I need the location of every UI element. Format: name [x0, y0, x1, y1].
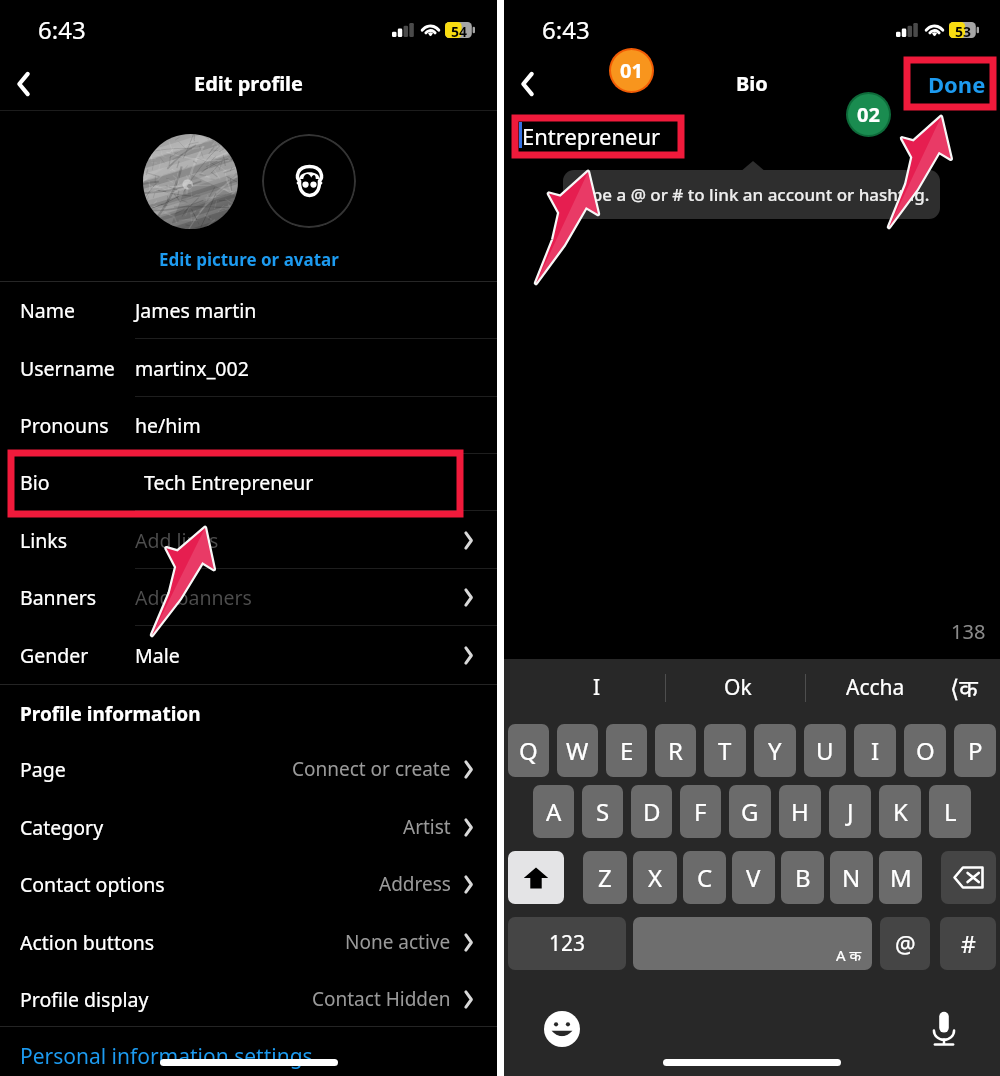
staticText: Z — [598, 861, 612, 894]
button[interactable]: Personal information settings — [18, 1040, 315, 1073]
button[interactable]: Backspace — [941, 851, 996, 904]
button[interactable]: Avatar — [262, 134, 356, 228]
staticText: Y — [768, 734, 782, 767]
button[interactable]: Page — [0, 740, 497, 798]
staticText: Bio — [736, 70, 768, 97]
button[interactable]: Back — [505, 62, 549, 106]
button[interactable]: M — [879, 851, 922, 904]
staticText: James martin — [135, 297, 257, 324]
button[interactable]: S — [582, 785, 623, 838]
button[interactable]: R — [655, 724, 696, 777]
staticText: Connect or create — [292, 756, 451, 782]
button[interactable]: F — [680, 785, 721, 838]
button[interactable]: J — [829, 785, 871, 838]
staticText: W — [566, 734, 589, 767]
button[interactable]: Ok — [670, 659, 806, 715]
button[interactable]: E — [606, 724, 647, 777]
button[interactable]: Voice input — [924, 1009, 964, 1049]
button[interactable]: Name — [0, 282, 497, 339]
button[interactable]: Accha — [810, 659, 940, 715]
staticText: F — [694, 795, 707, 828]
staticText: Add links — [135, 527, 219, 554]
staticText: 02 — [857, 101, 880, 128]
staticText: D — [643, 795, 661, 828]
staticText: Category — [20, 814, 104, 841]
staticText: Banners — [20, 584, 97, 611]
button[interactable]: G — [729, 785, 771, 838]
button[interactable]: V — [732, 851, 775, 904]
staticText: Profile display — [20, 986, 149, 1013]
staticText: # — [961, 928, 976, 959]
staticText: L — [944, 795, 957, 828]
staticText: A क — [836, 945, 862, 965]
staticText: J — [847, 795, 854, 828]
staticText: Type a @ or # to link an account or hash… — [567, 183, 936, 206]
button[interactable]: T — [704, 724, 746, 777]
button[interactable]: D — [631, 785, 672, 838]
button[interactable]: U — [804, 724, 846, 777]
staticText: C — [697, 861, 713, 894]
staticText: Contact Hidden — [312, 986, 451, 1012]
button[interactable]: Pronouns — [0, 397, 497, 454]
button[interactable]: Back — [1, 62, 45, 106]
button[interactable]: P — [954, 724, 996, 777]
staticText: B — [795, 861, 811, 894]
button[interactable]: Edit picture or avatar — [153, 246, 345, 273]
button[interactable]: @ — [880, 917, 930, 970]
staticText: None active — [345, 929, 451, 955]
staticText: V — [746, 861, 761, 894]
staticText: K — [893, 795, 908, 828]
staticText: Contact options — [20, 871, 165, 898]
button[interactable]: I — [854, 724, 896, 777]
staticText: Profile information — [20, 701, 201, 727]
button[interactable]: Y — [754, 724, 796, 777]
button[interactable]: Space — [633, 917, 872, 970]
button[interactable]: W — [557, 724, 598, 777]
button[interactable]: O — [904, 724, 946, 777]
button[interactable]: I — [532, 659, 662, 715]
staticText: M — [890, 861, 912, 894]
button[interactable]: Emoji — [542, 1009, 582, 1049]
button[interactable]: B — [781, 851, 824, 904]
button[interactable]: Profile display — [0, 970, 497, 1028]
button[interactable]: Z — [583, 851, 627, 904]
staticText: 54 — [447, 22, 471, 38]
staticText: 01 — [620, 57, 643, 84]
button[interactable]: Gender — [0, 626, 497, 684]
button[interactable]: K — [879, 785, 921, 838]
button[interactable]: 123 — [508, 917, 626, 970]
button[interactable]: Username — [0, 339, 497, 397]
staticText: martinx_002 — [135, 355, 249, 382]
button[interactable]: # — [940, 917, 996, 970]
staticText: he/him — [135, 412, 201, 439]
button[interactable]: X — [633, 851, 677, 904]
button[interactable]: Shift — [508, 851, 564, 904]
button[interactable]: N — [830, 851, 873, 904]
staticText: X — [648, 861, 663, 894]
button[interactable]: H — [779, 785, 821, 838]
staticText: N — [842, 861, 861, 894]
button[interactable]: Banners — [0, 569, 497, 626]
button[interactable]: Q — [508, 724, 549, 777]
button[interactable]: Action buttons — [0, 913, 497, 971]
button[interactable]: C — [683, 851, 726, 904]
button[interactable]: Contact options — [0, 855, 497, 913]
button[interactable]: Category — [0, 798, 497, 856]
button[interactable]: Links — [0, 511, 497, 569]
button[interactable]: Profile picture — [143, 134, 238, 229]
button[interactable]: Done — [920, 63, 994, 105]
staticText: T — [718, 734, 732, 767]
staticText: 6:43 — [38, 13, 86, 46]
button[interactable]: A — [533, 785, 574, 838]
staticText: I — [871, 734, 880, 767]
button[interactable]: Switch language — [934, 662, 994, 712]
staticText: H — [791, 795, 809, 828]
staticText: I — [593, 673, 601, 702]
button[interactable]: L — [929, 785, 971, 838]
staticText: Q — [519, 734, 538, 767]
staticText: Edit picture or avatar — [159, 248, 339, 271]
button[interactable]: Bio — [0, 454, 497, 511]
staticText: Gender — [20, 642, 89, 669]
staticText: Male — [135, 642, 180, 669]
staticText: Action buttons — [20, 929, 155, 956]
